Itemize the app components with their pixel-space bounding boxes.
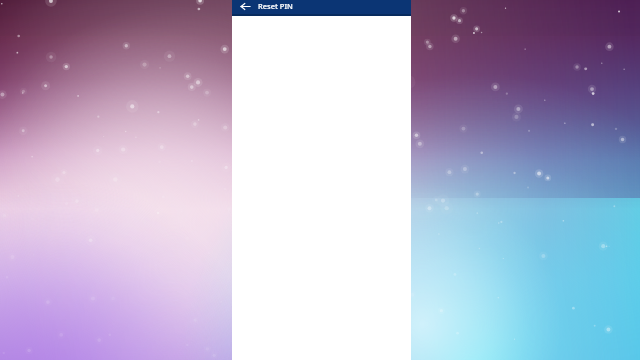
button[interactable]: Navigate up xyxy=(237,0,253,14)
staticText: Reset PIN xyxy=(258,1,293,11)
